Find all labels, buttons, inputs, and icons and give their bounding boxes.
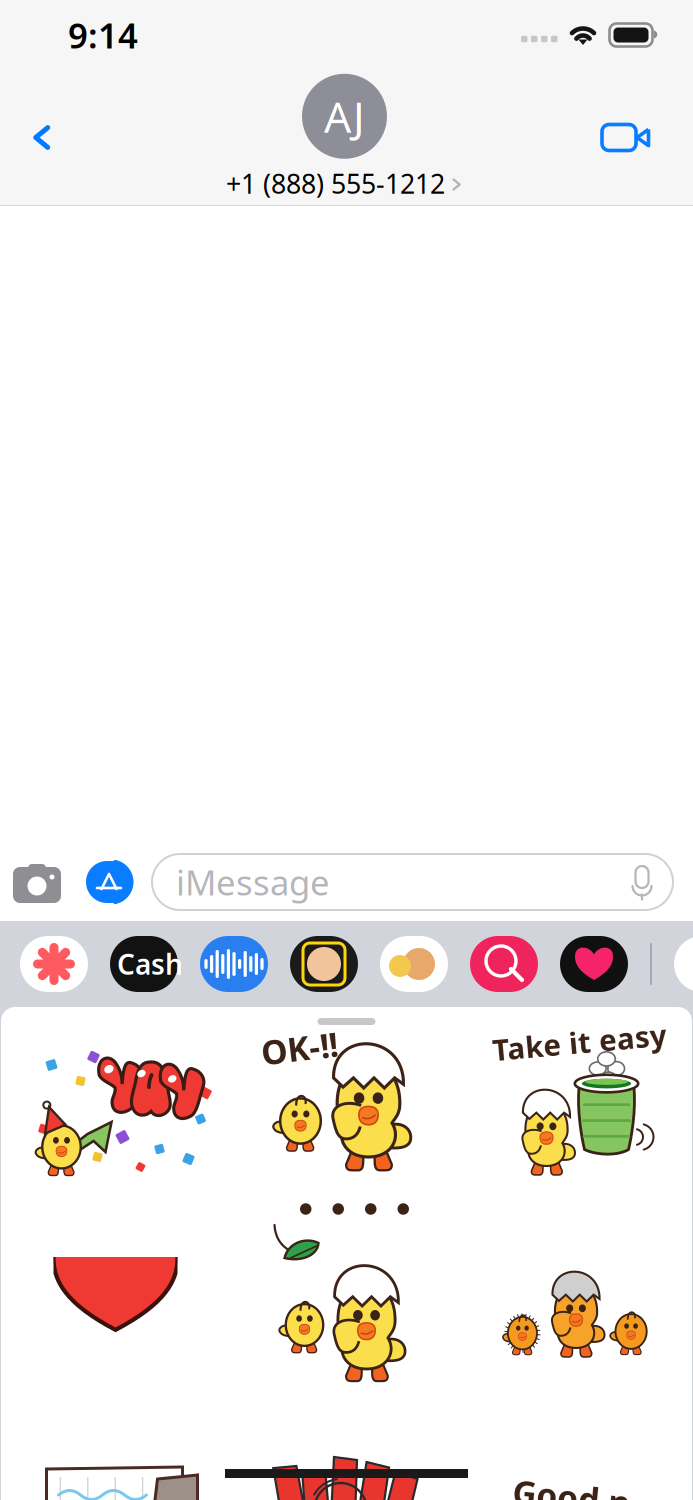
- staticText: Cash: [117, 945, 183, 983]
- button[interactable]: OK sticker: [231, 1025, 462, 1185]
- button[interactable]: Photos: [20, 936, 88, 992]
- button[interactable]: FaceTime: [591, 107, 661, 167]
- button[interactable]: Three chicks sticker: [462, 1185, 693, 1345]
- button[interactable]: Baseball sticker: [231, 1345, 462, 1500]
- button[interactable]: Camera: [0, 852, 74, 912]
- button[interactable]: Stickers: [380, 936, 448, 992]
- button[interactable]: Heart sticker: [0, 1185, 231, 1345]
- button[interactable]: Notebook sticker: [0, 1345, 231, 1500]
- button[interactable]: Memoji: [290, 936, 358, 992]
- staticText: iMessage: [176, 859, 330, 905]
- button[interactable]: Apple Cash: [110, 927, 178, 1001]
- button[interactable]: Back: [12, 107, 72, 167]
- button[interactable]: Digital Touch: [560, 936, 628, 992]
- button[interactable]: Yay sticker: [0, 1025, 231, 1185]
- button[interactable]: Sticker pack: [674, 936, 693, 992]
- button[interactable]: Search: [470, 936, 538, 992]
- staticText: OK-!!: [261, 1026, 338, 1070]
- button[interactable]: Audio: [200, 936, 268, 992]
- staticText: Good n: [512, 1475, 630, 1500]
- staticText: 9:14: [68, 12, 138, 58]
- staticText: +1 (888) 555-1212: [226, 166, 445, 201]
- staticText: AJ: [324, 88, 365, 145]
- button[interactable]: Good night sticker: [462, 1345, 693, 1500]
- button[interactable]: AJ: [228, 74, 465, 201]
- button[interactable]: Apps: [74, 852, 144, 912]
- button[interactable]: Take it easy sticker: [462, 1025, 693, 1185]
- staticText: Take it easy: [492, 1022, 667, 1061]
- button[interactable]: Chicks sticker: [231, 1185, 462, 1345]
